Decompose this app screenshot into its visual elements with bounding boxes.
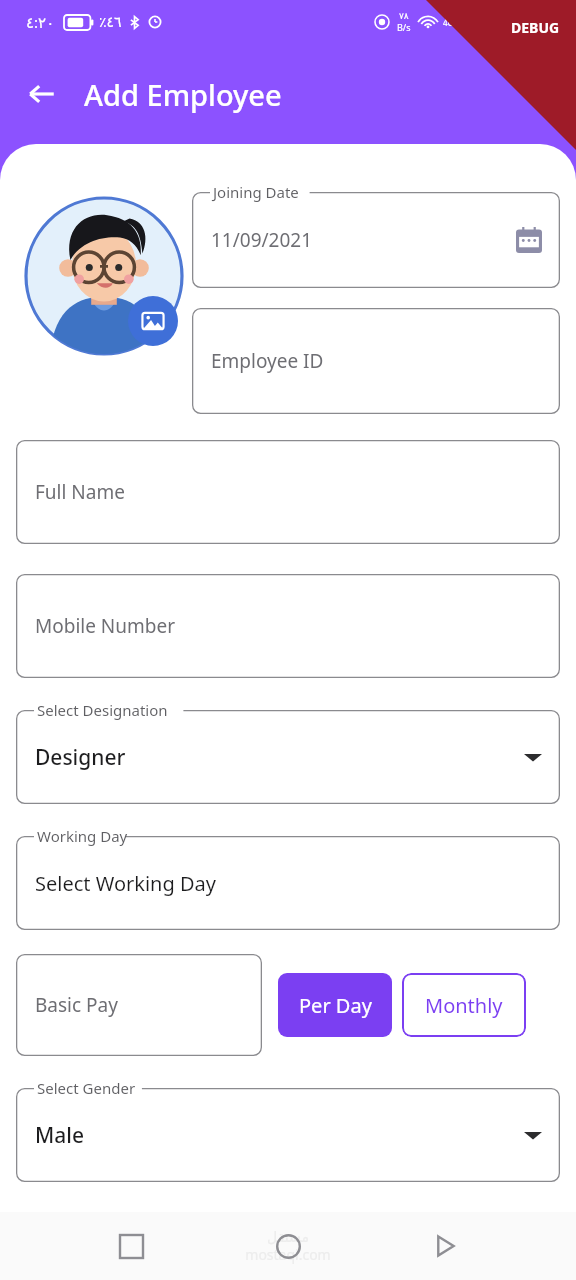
button[interactable]: Monthly	[402, 973, 526, 1037]
staticText: مستقل mostaqi.com	[245, 1229, 331, 1264]
staticText: Designer	[35, 743, 126, 772]
button[interactable]: Select Gender	[16, 1078, 560, 1182]
staticText: ٤:٢٠	[26, 12, 55, 32]
staticText: Basic Pay	[35, 992, 118, 1018]
staticText: Male	[35, 1121, 85, 1150]
staticText: Working Day	[37, 826, 128, 846]
staticText: 11/09/2021	[211, 227, 313, 253]
button[interactable]: Back	[16, 68, 68, 120]
staticText: Per Day	[299, 992, 372, 1019]
staticText: ٧٨	[399, 11, 409, 21]
button[interactable]: Basic Pay	[16, 954, 262, 1056]
button[interactable]: Change photo	[128, 296, 178, 346]
other: Open dropdown	[524, 1126, 542, 1144]
button[interactable]: Per Day	[278, 973, 392, 1037]
other: Open dropdown	[524, 748, 542, 766]
staticText: B/s	[397, 21, 411, 33]
staticText: Select Designation	[37, 700, 168, 720]
other: Employee photo	[24, 196, 184, 356]
staticText: Select Gender	[37, 1078, 136, 1098]
staticText: Add Employee	[84, 75, 282, 114]
staticText: Joining Date	[213, 182, 299, 202]
staticText: etisalat	[535, 16, 566, 28]
staticText: Select Working Day	[35, 870, 216, 897]
button[interactable]: Home	[262, 1220, 314, 1272]
staticText: Mobile Number	[35, 613, 176, 639]
button[interactable]: Recent apps	[105, 1220, 157, 1272]
staticText: Full Name	[35, 479, 125, 505]
staticText: Monthly	[425, 992, 503, 1019]
button[interactable]: Back	[419, 1220, 471, 1272]
button[interactable]: Mobile Number	[16, 574, 560, 678]
staticText: VoLTE	[509, 17, 529, 27]
button[interactable]: Select Designation	[16, 700, 560, 804]
staticText: 4G	[443, 17, 454, 28]
button[interactable]: Joining Date	[192, 182, 560, 288]
other: Pick joining date	[516, 227, 542, 253]
staticText: Employee ID	[211, 348, 324, 374]
staticText: DEBUG	[511, 18, 560, 37]
staticText: ٪٤٦	[99, 14, 122, 30]
button[interactable]: Full Name	[16, 440, 560, 544]
button[interactable]: Employee ID	[192, 308, 560, 414]
button[interactable]: Working Day	[16, 826, 560, 930]
